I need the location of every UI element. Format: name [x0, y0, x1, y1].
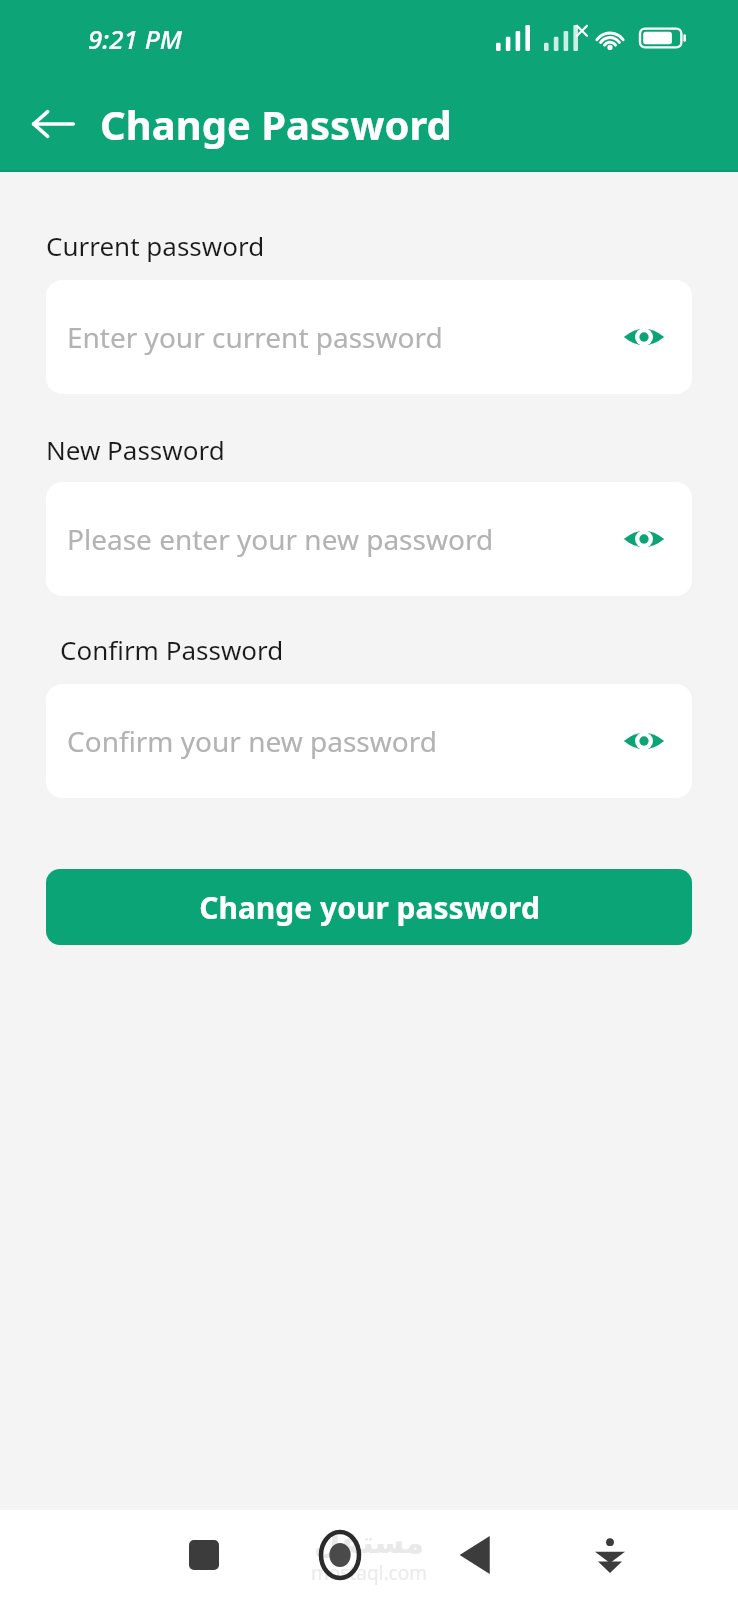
button[interactable]: Change your password — [46, 869, 692, 945]
button[interactable]: Back — [407, 1510, 542, 1600]
button[interactable]: Home — [272, 1510, 407, 1600]
staticText: مستقل — [314, 1525, 424, 1560]
button[interactable]: Show password — [612, 709, 676, 773]
staticText: Change your password — [199, 887, 540, 928]
staticText: mostaql.com — [311, 1560, 427, 1586]
button[interactable]: Confirm your new password — [46, 684, 692, 798]
staticText: Change Password — [100, 97, 452, 151]
button[interactable]: Back — [20, 91, 86, 157]
staticText: Enter your current password — [67, 318, 443, 356]
button[interactable]: Please enter your new password — [46, 482, 692, 596]
staticText: Current password — [46, 228, 265, 263]
staticText: Confirm your new password — [67, 722, 437, 760]
button[interactable]: Show password — [612, 507, 676, 571]
staticText: New Password — [46, 432, 225, 467]
button[interactable]: Hide keyboard — [542, 1510, 677, 1600]
staticText: Please enter your new password — [67, 520, 494, 558]
staticText: Confirm Password — [60, 632, 284, 667]
button[interactable]: Enter your current password — [46, 280, 692, 394]
button[interactable]: Show password — [612, 305, 676, 369]
button[interactable]: Recents — [136, 1510, 272, 1600]
staticText: 9:21 PM — [88, 21, 182, 56]
